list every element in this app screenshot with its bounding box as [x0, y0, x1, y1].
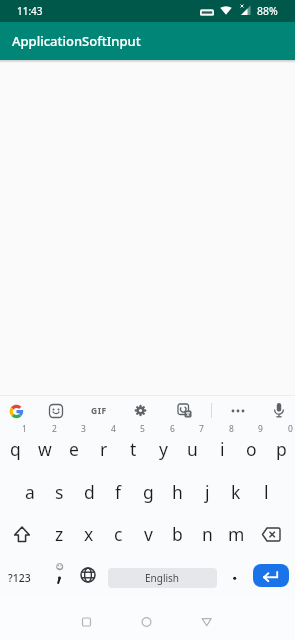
staticText: e — [69, 437, 79, 461]
button[interactable] — [45, 558, 73, 594]
button[interactable]: i — [207, 428, 237, 470]
button[interactable] — [131, 401, 150, 420]
button[interactable]: u — [177, 428, 207, 470]
button[interactable]: g — [133, 471, 163, 513]
button[interactable] — [176, 402, 194, 420]
button[interactable]: z — [44, 513, 74, 555]
button[interactable]: e — [59, 428, 89, 470]
staticText: 6 — [170, 423, 175, 435]
button[interactable]: c — [103, 513, 133, 555]
button[interactable]: f — [103, 471, 133, 513]
staticText: m — [228, 522, 245, 546]
staticText: q — [10, 437, 21, 461]
button[interactable] — [253, 564, 289, 587]
button[interactable] — [132, 608, 161, 636]
staticText: g — [143, 480, 154, 504]
button[interactable]: s — [44, 471, 74, 513]
staticText: GIF — [91, 405, 107, 417]
staticText: z — [55, 522, 64, 546]
button[interactable]: l — [251, 471, 281, 513]
button[interactable] — [256, 520, 288, 550]
button[interactable] — [47, 402, 65, 420]
staticText: l — [264, 480, 269, 504]
staticText: t — [130, 437, 137, 461]
button[interactable] — [7, 520, 37, 550]
staticText: 88% — [257, 4, 278, 18]
staticText: 7 — [199, 423, 204, 435]
staticText: h — [172, 480, 183, 504]
staticText: n — [202, 522, 213, 546]
staticText: c — [114, 522, 123, 546]
staticText: r — [100, 437, 108, 461]
staticText: 11:43 — [17, 4, 43, 18]
staticText: u — [187, 437, 198, 461]
button[interactable]: t — [118, 428, 148, 470]
staticText: ApplicationSoftInput — [12, 32, 141, 50]
staticText: a — [25, 480, 35, 504]
button[interactable]: k — [221, 471, 251, 513]
button[interactable]: n — [192, 513, 222, 555]
staticText: j — [205, 480, 210, 504]
staticText: o — [246, 437, 257, 461]
button[interactable]: m — [221, 513, 251, 555]
button[interactable]: v — [133, 513, 163, 555]
staticText: p — [276, 437, 287, 461]
staticText: x — [84, 522, 94, 546]
button[interactable]: j — [192, 471, 222, 513]
button[interactable] — [72, 608, 101, 636]
button[interactable]: d — [74, 471, 104, 513]
button[interactable]: h — [162, 471, 192, 513]
button[interactable]: o — [236, 428, 266, 470]
button[interactable]: English — [108, 568, 217, 588]
staticText: f — [115, 480, 122, 504]
staticText: 3 — [81, 423, 86, 435]
button[interactable]: b — [162, 513, 192, 555]
button[interactable]: r — [89, 428, 119, 470]
button[interactable]: x — [74, 513, 104, 555]
button[interactable]: a — [15, 471, 45, 513]
staticText: y — [159, 437, 168, 461]
staticText: k — [231, 480, 241, 504]
staticText: ?123 — [8, 571, 31, 585]
staticText: 4 — [111, 423, 116, 435]
staticText: d — [84, 480, 95, 504]
staticText: v — [144, 522, 153, 546]
staticText: 2 — [52, 423, 57, 435]
button[interactable]: w — [30, 428, 60, 470]
button[interactable] — [6, 401, 27, 422]
staticText: b — [172, 522, 183, 546]
button[interactable] — [270, 401, 288, 420]
staticText: 0 — [288, 423, 293, 435]
button[interactable]: p — [266, 428, 295, 470]
button[interactable] — [192, 608, 221, 636]
button[interactable] — [221, 560, 249, 596]
button[interactable]: q — [0, 428, 30, 470]
button[interactable] — [228, 401, 248, 421]
button[interactable]: ?123 — [0, 558, 38, 598]
button[interactable]: y — [148, 428, 178, 470]
staticText: i — [220, 437, 225, 461]
staticText: 1 — [22, 423, 27, 435]
staticText: English — [145, 571, 180, 585]
staticText: w — [38, 437, 52, 461]
staticText: 9 — [258, 423, 263, 435]
staticText: 8 — [229, 423, 234, 435]
button[interactable] — [74, 561, 102, 589]
staticText: 5 — [140, 423, 145, 435]
staticText: s — [55, 480, 64, 504]
